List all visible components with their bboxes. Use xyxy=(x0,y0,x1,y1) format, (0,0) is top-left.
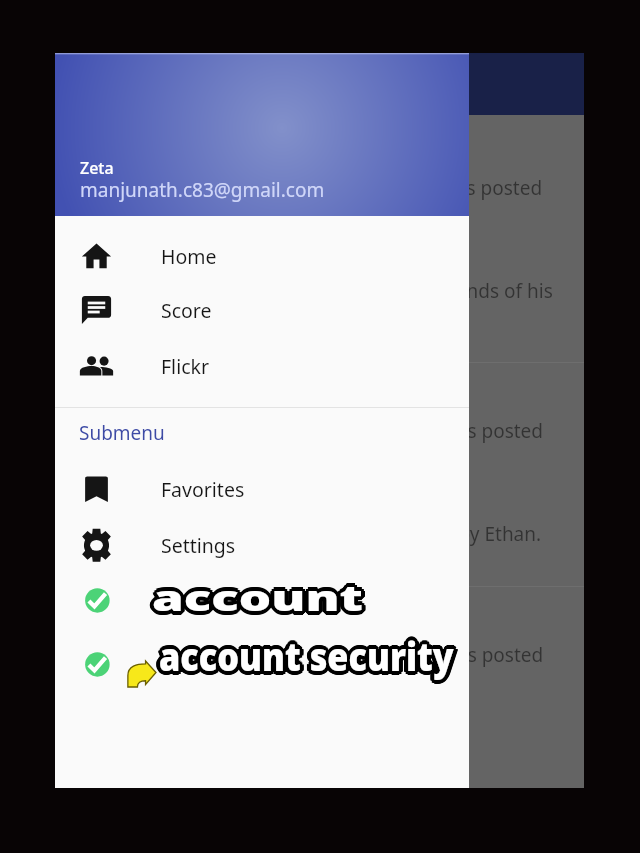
staticText: Score xyxy=(161,297,212,324)
staticText: account security xyxy=(159,635,454,686)
staticText: account xyxy=(151,577,363,624)
staticText: account xyxy=(153,577,365,624)
staticText: account security xyxy=(157,630,452,682)
staticText: account security xyxy=(160,630,455,682)
staticText: account xyxy=(156,574,368,621)
staticText: account xyxy=(151,575,363,622)
staticText: account security xyxy=(161,633,456,685)
staticText: account security xyxy=(157,631,452,683)
staticText: account xyxy=(151,574,363,621)
staticText: account security xyxy=(156,633,451,685)
button[interactable]: Account security xyxy=(55,635,469,691)
staticText: account security xyxy=(162,632,457,683)
staticText: account security xyxy=(158,632,453,683)
staticText: account xyxy=(154,576,366,623)
staticText: account security xyxy=(162,629,457,680)
button[interactable]: Flickr xyxy=(55,338,469,394)
staticText: account security xyxy=(161,634,456,686)
staticText: Submenu xyxy=(79,420,165,446)
staticText: account security xyxy=(163,632,458,683)
staticText: account xyxy=(148,575,360,622)
staticText: account security xyxy=(158,631,453,683)
staticText: account xyxy=(155,575,367,622)
staticText: Zeta xyxy=(80,157,114,179)
staticText: account xyxy=(153,574,365,621)
staticText: Yesterday Amelia Hughes posted xyxy=(250,642,544,668)
staticText: account security xyxy=(159,633,454,685)
staticText: account security xyxy=(163,631,458,683)
button[interactable]: Home xyxy=(55,228,469,284)
staticText: account xyxy=(149,574,361,621)
staticText: account xyxy=(150,577,362,624)
staticText: account security xyxy=(157,628,452,680)
staticText: account xyxy=(154,575,366,622)
staticText: account security xyxy=(161,629,456,680)
staticText: manjunath.c83@gmail.com xyxy=(80,177,325,203)
button[interactable]: Score xyxy=(55,282,469,338)
staticText: account security xyxy=(161,632,456,683)
staticText: account xyxy=(152,576,364,623)
staticText: account security xyxy=(158,630,453,682)
staticText: account security xyxy=(159,632,454,683)
staticText: account xyxy=(149,572,361,619)
staticText: account xyxy=(154,571,366,618)
staticText: account xyxy=(155,574,367,621)
staticText: account security xyxy=(159,631,454,683)
staticText: account security xyxy=(157,629,452,680)
staticText: account security xyxy=(158,627,453,679)
staticText: account xyxy=(153,576,365,623)
staticText: account xyxy=(149,575,361,622)
staticText: account security xyxy=(159,631,454,683)
staticText: account security xyxy=(156,632,451,683)
staticText: account security xyxy=(158,629,453,680)
staticText: account xyxy=(153,578,365,625)
staticText: Amelia with the help of friends of his xyxy=(226,278,553,304)
staticText: account security xyxy=(159,627,454,679)
staticText: account security xyxy=(160,631,455,683)
staticText: account security xyxy=(161,631,456,683)
staticText: account xyxy=(153,571,365,618)
staticText: account xyxy=(152,574,364,621)
staticText: account xyxy=(156,573,368,620)
staticText: account security xyxy=(155,632,450,683)
staticText: account xyxy=(151,573,363,620)
staticText: account security xyxy=(160,627,455,679)
staticText: account xyxy=(152,573,364,620)
staticText: Just now Amelia Hughes posted xyxy=(260,175,543,201)
staticText: account xyxy=(148,573,360,620)
staticText: account xyxy=(154,574,366,621)
staticText: account xyxy=(155,572,367,619)
staticText: account security xyxy=(160,628,455,680)
staticText: account xyxy=(152,577,364,624)
staticText: account xyxy=(149,576,361,623)
staticText: account security xyxy=(163,630,458,682)
staticText: account security xyxy=(162,631,457,683)
staticText: Favorites xyxy=(161,476,245,503)
button[interactable]: Account xyxy=(55,571,469,627)
staticText: account xyxy=(155,573,367,620)
staticText: account security xyxy=(160,632,455,683)
button[interactable]: Settings xyxy=(55,517,469,573)
staticText: account security xyxy=(160,633,455,685)
staticText: account security xyxy=(161,628,456,680)
button[interactable]: Favorites xyxy=(55,461,469,517)
staticText: account security xyxy=(157,632,452,683)
staticText: account xyxy=(152,574,364,621)
staticText: account security xyxy=(157,633,452,685)
staticText: account xyxy=(152,575,364,622)
staticText: account xyxy=(150,576,362,623)
staticText: account security xyxy=(158,635,453,686)
staticText: account security xyxy=(156,630,451,682)
staticText: account security xyxy=(162,630,457,682)
staticText: account xyxy=(153,575,365,622)
staticText: Settings xyxy=(161,532,236,559)
staticText: account security xyxy=(155,630,450,682)
staticText: account security xyxy=(159,628,454,680)
staticText: account security xyxy=(160,629,455,680)
staticText: account xyxy=(155,576,367,623)
staticText: 2 hours ago Amelia Hughes posted xyxy=(230,418,544,444)
staticText: account security xyxy=(160,635,455,686)
staticText: account xyxy=(153,570,365,617)
staticText: account xyxy=(150,574,362,621)
staticText: account security xyxy=(159,630,454,682)
